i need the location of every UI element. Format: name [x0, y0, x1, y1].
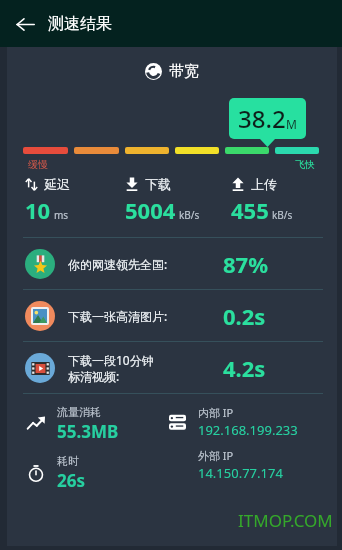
staticText: 流量消耗 [57, 405, 101, 419]
staticText: 你的网速领先全国: [68, 256, 223, 272]
staticText: 5004 [125, 195, 176, 225]
staticText: 55.3MB [57, 420, 119, 443]
staticText: 内部 IP [198, 405, 234, 420]
button[interactable]: 流量消耗 [25, 405, 119, 443]
staticText: 延迟 [44, 176, 70, 192]
staticText: 4.2s [223, 353, 323, 383]
staticText: M [286, 116, 297, 132]
staticText: 带宽 [169, 62, 199, 81]
staticText: 10 [25, 195, 51, 225]
staticText: 下载一张高清图片: [68, 308, 223, 324]
button[interactable]: 下载 [125, 176, 231, 225]
staticText: 38.2 [238, 102, 286, 135]
button[interactable]: 下载一段10分钟 标清视频: [7, 342, 337, 393]
staticText: 下载一段10分钟 标清视频: [68, 352, 223, 384]
staticText: 上传 [251, 176, 277, 192]
staticText: 192.168.199.233 [198, 421, 298, 439]
button[interactable]: 下载一张高清图片: [7, 290, 337, 341]
staticText: ITMOP.COM [238, 509, 333, 532]
staticText: 飞快 [295, 158, 315, 171]
staticText: 下载 [145, 176, 171, 192]
button[interactable]: 你的网速领先全国: [7, 238, 337, 289]
button[interactable]: 上传 [231, 176, 327, 225]
staticText: ms [54, 208, 69, 222]
staticText: 87% [223, 249, 323, 279]
staticText: 测速结果 [48, 14, 112, 34]
staticText: 耗时 [57, 454, 79, 468]
staticText: 0.2s [223, 301, 323, 331]
button[interactable]: 外部 IP [166, 448, 283, 482]
button[interactable]: 耗时 [25, 454, 85, 492]
staticText: 455 [231, 195, 269, 225]
button[interactable]: Back [8, 7, 42, 41]
button[interactable]: 内部 IP [166, 405, 298, 439]
staticText: 外部 IP [198, 448, 234, 463]
staticText: 26s [57, 469, 85, 492]
button[interactable]: 延迟 [25, 176, 125, 225]
staticText: 14.150.77.174 [198, 464, 283, 482]
staticText: kB/s [179, 208, 200, 222]
staticText: kB/s [272, 208, 293, 222]
staticText: 缓慢 [28, 158, 48, 171]
